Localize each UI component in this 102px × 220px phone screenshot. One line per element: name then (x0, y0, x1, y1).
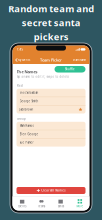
staticText: The Names (16, 69, 37, 74)
staticText: 1:45 (16, 48, 23, 51)
staticText: Mark Ramos (19, 124, 33, 127)
button[interactable]: Jack Brown (16, 105, 85, 113)
staticText: Santa (58, 204, 64, 208)
staticText: Jack Brown (19, 108, 33, 111)
staticText: Events (18, 204, 26, 208)
staticText: Random team and (8, 2, 94, 15)
button[interactable]: Ellen George (16, 130, 85, 138)
button[interactable]: My Events (15, 58, 30, 62)
staticText: Sue Parker (19, 141, 33, 144)
button[interactable]: Teams (32, 196, 51, 210)
button[interactable]: Mark Ramos (16, 122, 85, 130)
button[interactable]: More (70, 196, 89, 210)
staticText: More (76, 204, 83, 208)
staticText: Team Name (72, 58, 86, 62)
button[interactable]: Santa (51, 196, 70, 210)
button[interactable]: Events (12, 196, 32, 210)
staticText: George Smith (19, 99, 38, 103)
staticText: Teams (38, 204, 45, 208)
staticText: My Events (18, 58, 30, 62)
button[interactable]: George Smith (16, 97, 85, 105)
staticText: secret santa (21, 16, 80, 29)
button[interactable]: Sue Parker (16, 139, 85, 147)
button[interactable]: Ines Sebastián (16, 89, 85, 97)
staticText: pickers (33, 30, 68, 43)
staticText: Clear All Names (41, 189, 65, 192)
staticText: Ines Sebastián (19, 91, 38, 94)
button[interactable]: Team Name (72, 58, 86, 62)
staticText: Red (17, 84, 23, 87)
button[interactable]: Shuffle (54, 66, 85, 72)
staticText: Group (17, 117, 26, 120)
staticText: Ellen George (19, 132, 38, 136)
button[interactable]: Clear All Names (16, 187, 85, 194)
staticText: Shuffle (65, 67, 75, 71)
staticText: Team Picker (40, 57, 62, 63)
staticText: Tap a name to edit it, swipe to delete (16, 75, 69, 78)
